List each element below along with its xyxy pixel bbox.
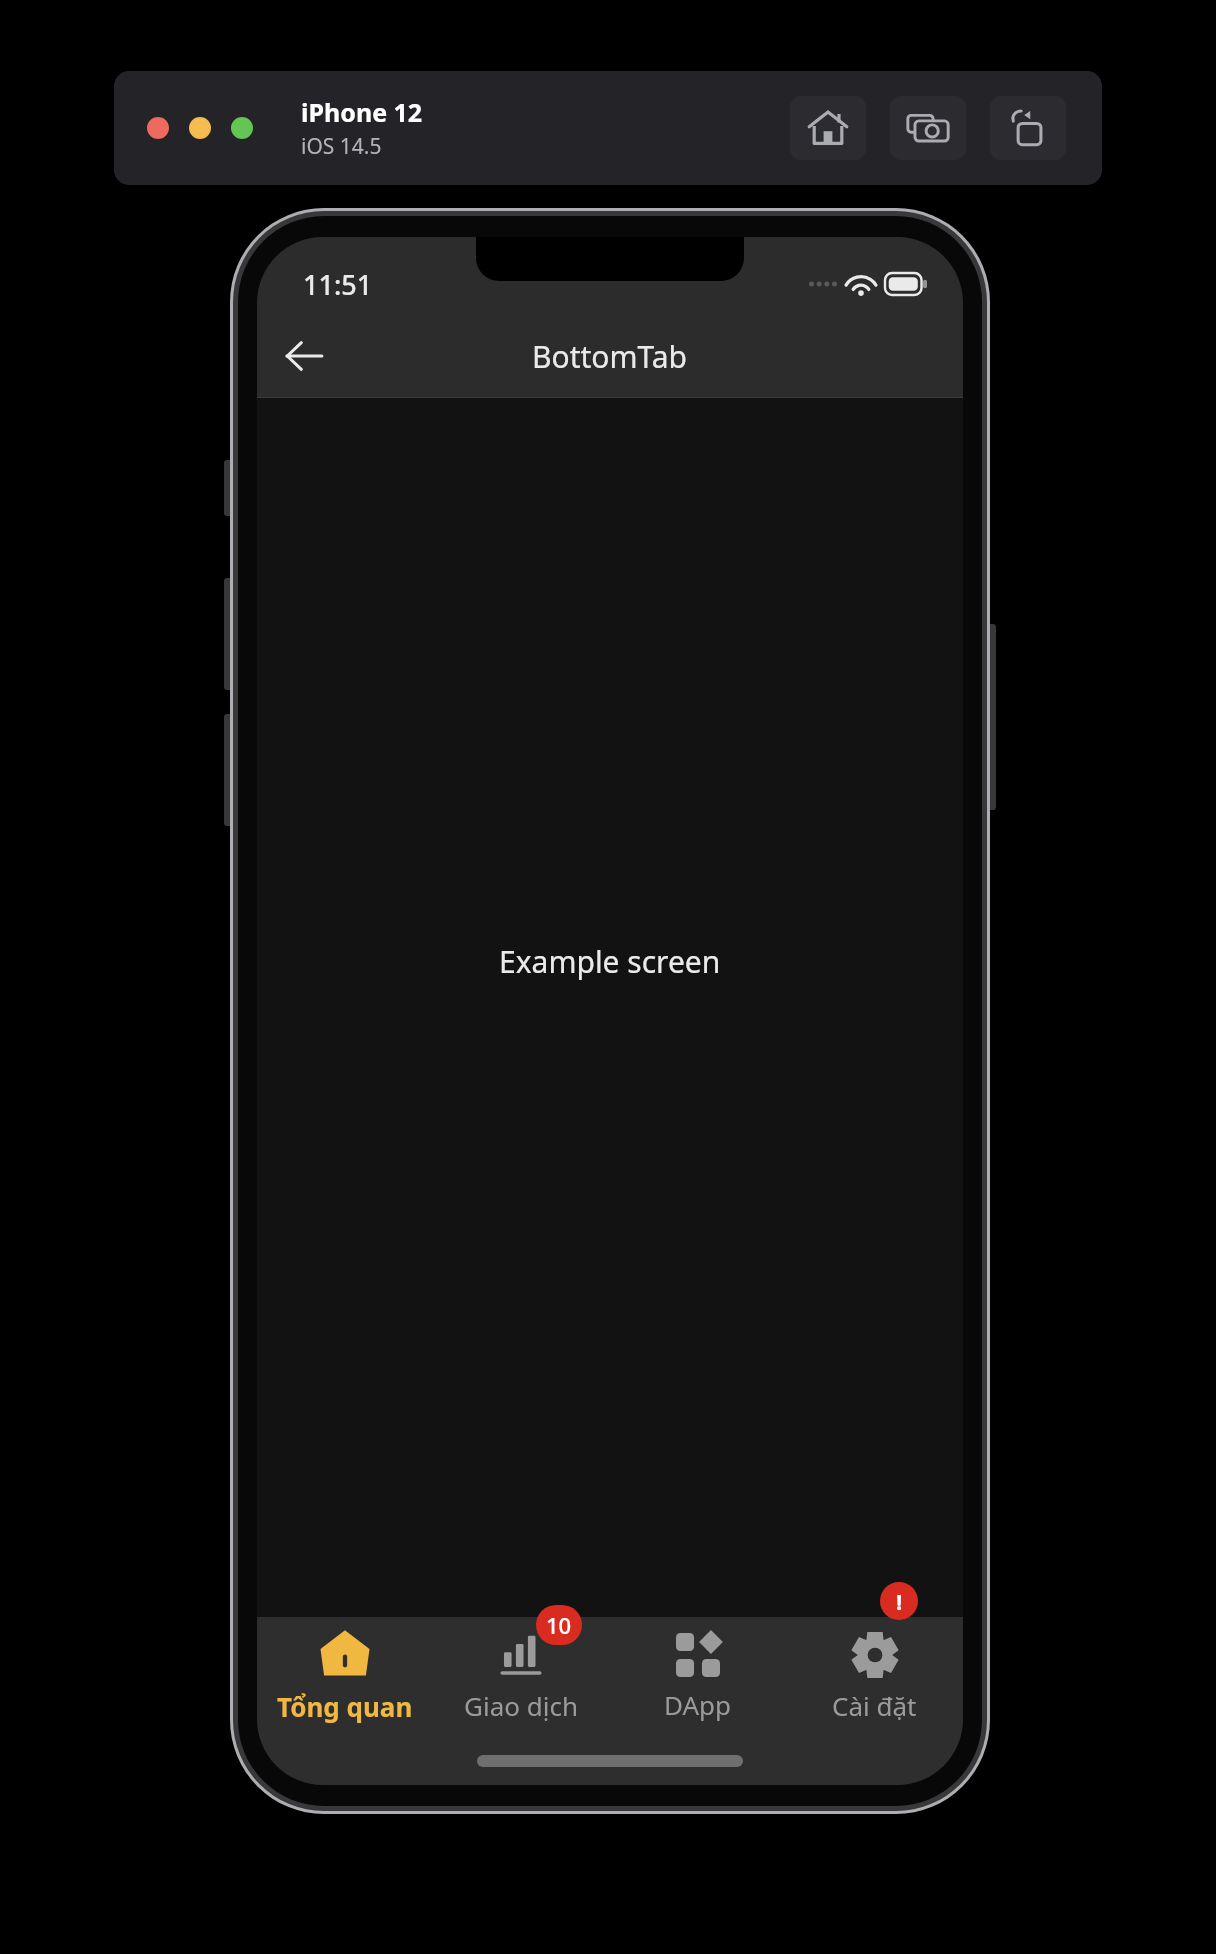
button[interactable]: DApp	[609, 1617, 786, 1737]
button[interactable]: Rotate	[990, 96, 1066, 160]
button[interactable]: !	[786, 1617, 963, 1737]
staticText: DApp	[664, 1687, 732, 1722]
staticText: 10	[546, 1610, 572, 1640]
staticText: Cài đặt	[832, 1688, 917, 1723]
staticText: Tổng quan	[277, 1689, 413, 1724]
staticText: BottomTab	[532, 336, 688, 377]
staticText: Example screen	[499, 941, 721, 982]
button[interactable]: Screenshot	[890, 96, 966, 160]
staticText: 11:51	[303, 266, 373, 303]
button[interactable]: Tổng quan	[257, 1617, 433, 1737]
button[interactable]: Back	[269, 321, 339, 391]
staticText: iPhone 12	[301, 95, 423, 129]
button[interactable]: Home	[790, 96, 866, 160]
staticText: Giao dịch	[464, 1688, 578, 1723]
staticText: iOS 14.5	[301, 132, 382, 161]
staticText: !	[896, 1586, 903, 1616]
button[interactable]: 10	[433, 1617, 609, 1737]
